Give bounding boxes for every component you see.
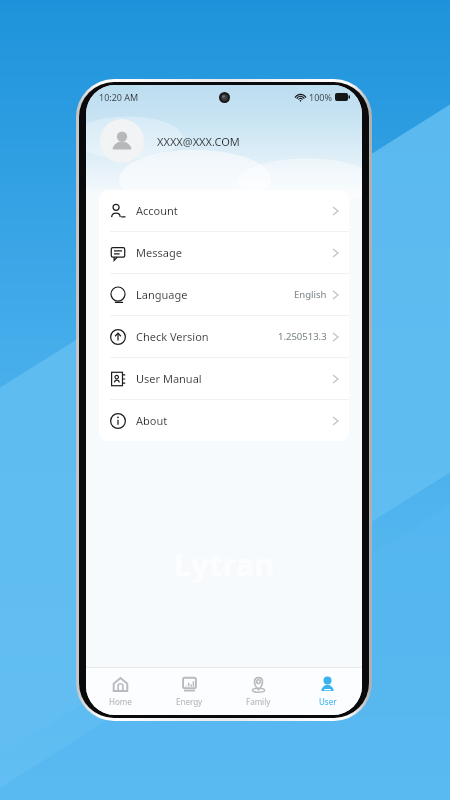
staticText: Message [136, 245, 182, 260]
button[interactable] [100, 119, 144, 163]
staticText: 100% [309, 91, 332, 103]
button[interactable]: Check Version [99, 316, 349, 358]
staticText: XXXX@XXX.COM [157, 134, 240, 149]
button[interactable]: Energy [155, 668, 224, 715]
staticText: Family [246, 696, 271, 707]
staticText: Home [109, 696, 132, 707]
staticText: Account [136, 203, 178, 218]
staticText: Language [136, 287, 188, 302]
staticText: Check Version [136, 329, 209, 344]
staticText: 1.250513.3 [278, 330, 327, 343]
staticText: User Manual [136, 371, 202, 386]
staticText: 10:20 AM [99, 91, 139, 103]
button[interactable]: Message [99, 232, 349, 274]
staticText: English [294, 288, 327, 301]
button[interactable]: About [99, 400, 349, 441]
staticText: Energy [176, 696, 203, 707]
button[interactable]: Home [86, 668, 155, 715]
staticText: User [319, 696, 337, 707]
button[interactable]: Family [224, 668, 293, 715]
button[interactable]: Language [99, 274, 349, 316]
button[interactable]: Account [99, 190, 349, 232]
button[interactable]: User Manual [99, 358, 349, 400]
staticText: About [136, 413, 168, 428]
button[interactable]: User [293, 668, 362, 715]
